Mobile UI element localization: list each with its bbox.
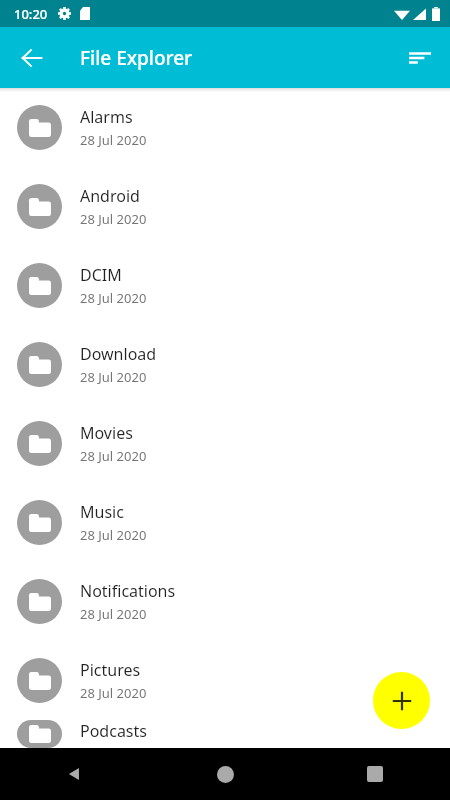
button[interactable]: Navigate up <box>10 36 54 80</box>
staticText: 28 Jul 2020 <box>80 210 147 228</box>
staticText: 28 Jul 2020 <box>80 131 147 149</box>
staticText: 28 Jul 2020 <box>80 605 147 623</box>
staticText: DCIM <box>80 264 122 286</box>
staticText: Pictures <box>80 659 141 681</box>
staticText: 28 Jul 2020 <box>80 289 147 307</box>
staticText: 28 Jul 2020 <box>80 447 147 465</box>
button[interactable]: Podcasts <box>0 720 450 748</box>
staticText: Android <box>80 185 140 207</box>
button[interactable]: Music <box>0 483 450 562</box>
staticText: 28 Jul 2020 <box>80 368 147 386</box>
button[interactable]: Home <box>150 748 300 800</box>
staticText: Movies <box>80 422 133 444</box>
button[interactable]: DCIM <box>0 246 450 325</box>
button[interactable]: Alarms <box>0 88 450 167</box>
button[interactable]: Recent apps <box>300 748 450 800</box>
button[interactable]: Pictures <box>0 641 450 720</box>
staticText: File Explorer <box>80 45 193 71</box>
staticText: Music <box>80 501 124 523</box>
staticText: Alarms <box>80 106 133 128</box>
button[interactable]: Download <box>0 325 450 404</box>
button[interactable]: Add <box>373 672 430 729</box>
button[interactable]: Back <box>0 748 150 800</box>
staticText: 28 Jul 2020 <box>80 526 147 544</box>
staticText: Notifications <box>80 580 176 602</box>
button[interactable]: Android <box>0 167 450 246</box>
staticText: Podcasts <box>80 720 147 742</box>
staticText: Download <box>80 343 157 365</box>
staticText: 10:20 <box>14 5 48 23</box>
button[interactable]: Sort <box>398 36 442 80</box>
staticText: 28 Jul 2020 <box>80 684 147 702</box>
button[interactable]: Notifications <box>0 562 450 641</box>
button[interactable]: Movies <box>0 404 450 483</box>
